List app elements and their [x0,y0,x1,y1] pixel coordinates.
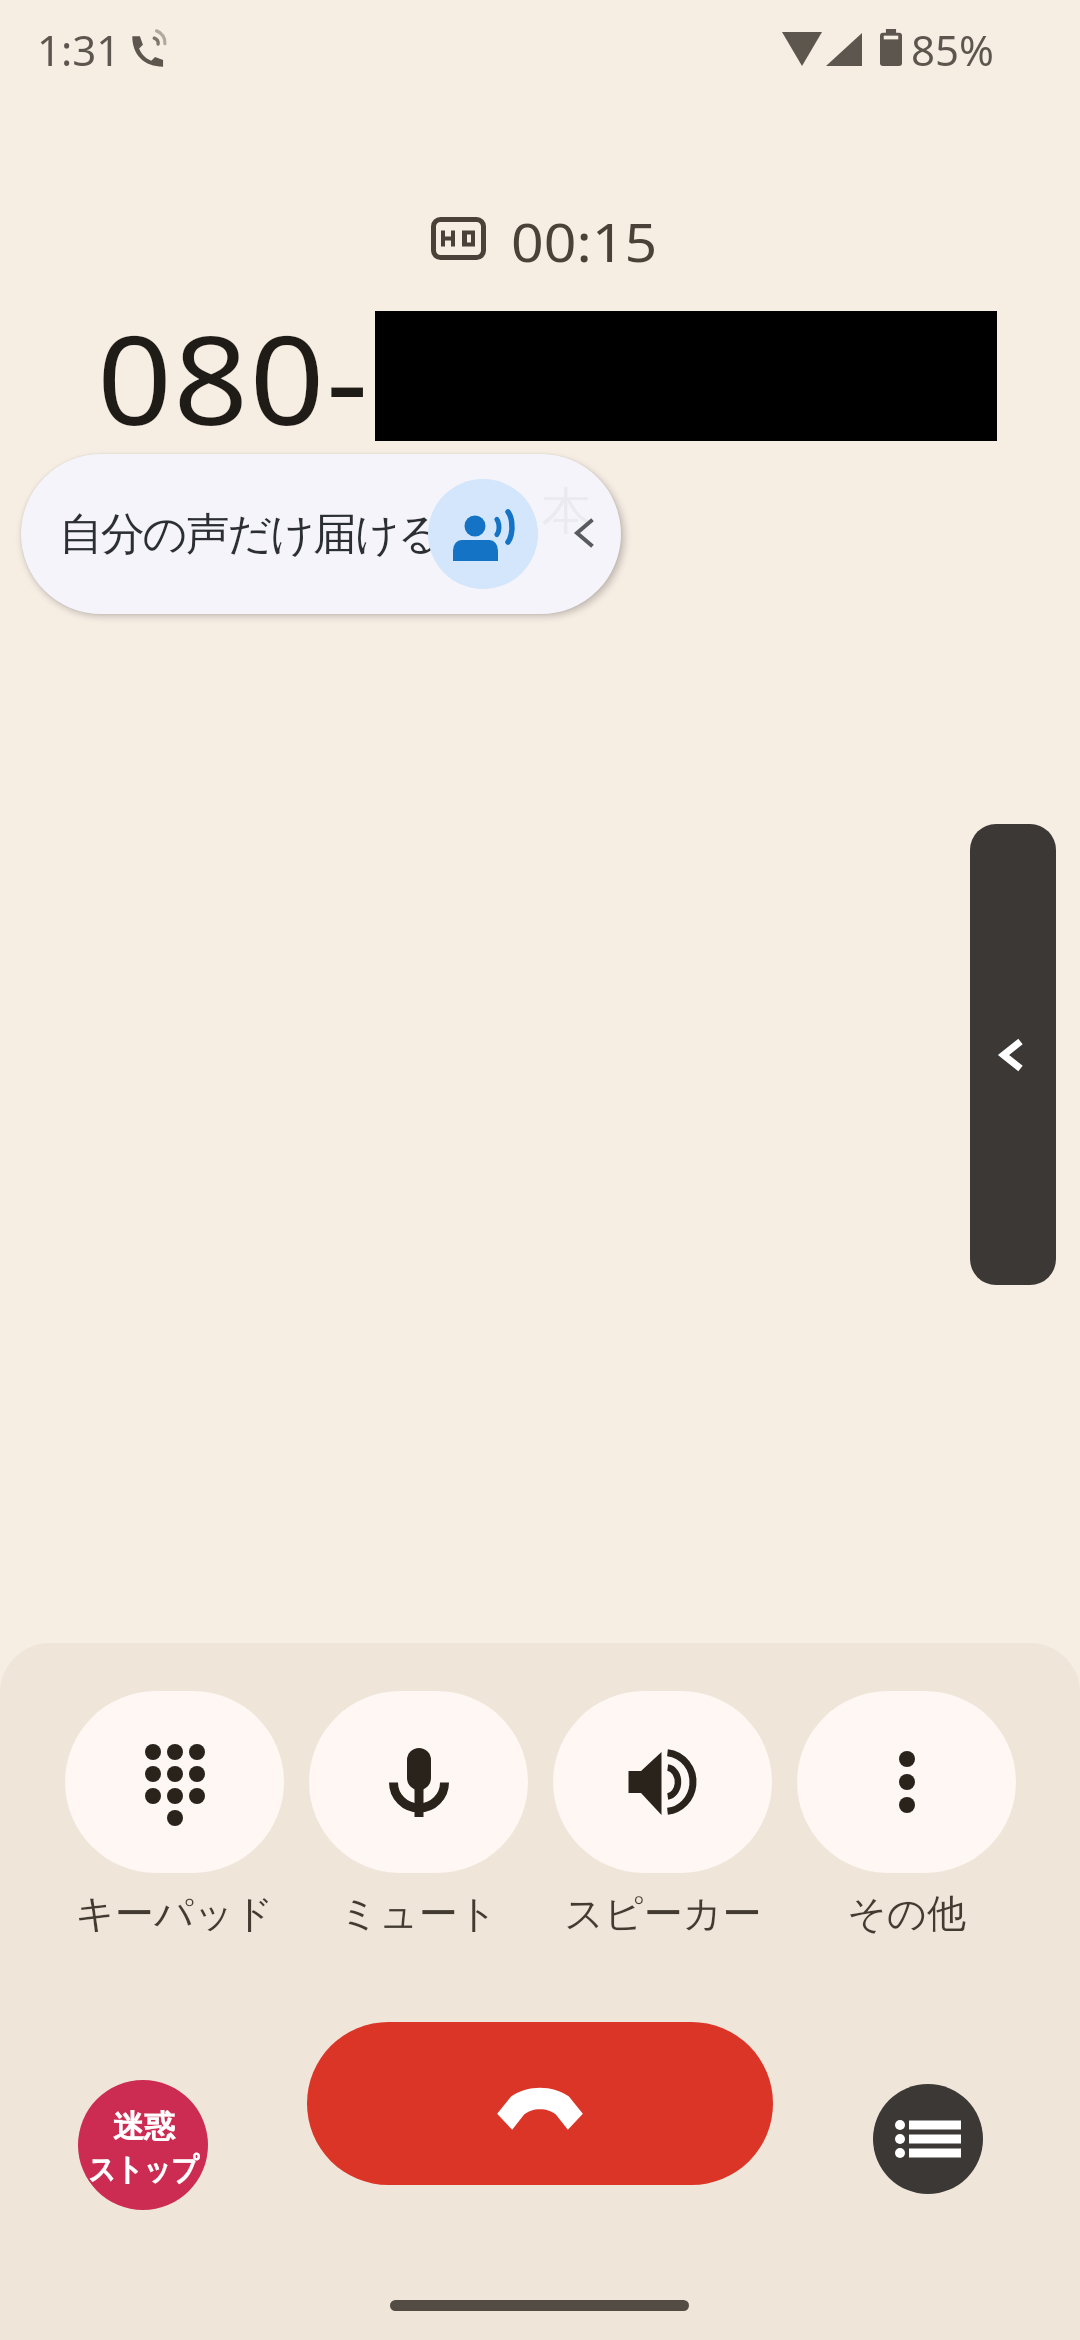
staticText: その他 [847,1889,966,1938]
button[interactable]: Mute [309,1691,528,1938]
button[interactable]: End call [307,2022,773,2185]
staticText: 自分の声だけ届ける [59,507,441,562]
button[interactable]: Keypad [65,1691,284,1938]
staticText: 1:31 [37,21,121,78]
button[interactable]: Expand call panel [970,824,1056,1285]
staticText: ミュート [339,1889,498,1938]
staticText: 00:15 [511,206,657,277]
button[interactable]: More options [797,1691,1016,1938]
button[interactable]: 迷惑 [78,2080,208,2210]
staticText: 85% [911,21,994,78]
staticText: 080- [97,295,370,461]
staticText: 本 [541,480,591,543]
button[interactable]: Call notes [873,2084,983,2194]
staticText: キーパッド [75,1889,274,1938]
button[interactable]: 自分の声だけ届ける [21,454,621,614]
staticText: ストップ [88,2150,199,2189]
staticText: スピーカー [564,1889,762,1938]
button[interactable]: Speaker [553,1691,772,1938]
staticText: 迷惑 [113,2107,175,2146]
